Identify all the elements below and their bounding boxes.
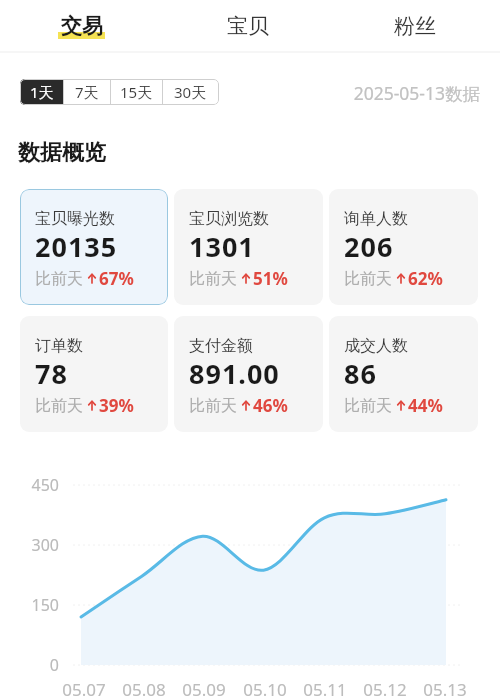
button[interactable]: 宝贝曝光数 (20, 189, 168, 305)
staticText: 粉丝 (394, 13, 436, 39)
staticText: 比前天 (35, 269, 83, 289)
button[interactable]: 订单数 (20, 316, 168, 432)
staticText: 比前天 (344, 396, 392, 416)
staticText: 150 (0, 594, 59, 616)
staticText: 450 (0, 474, 59, 496)
staticText: 0 (0, 654, 59, 676)
staticText: 支付金额 (189, 336, 253, 356)
staticText: 15天 (120, 82, 153, 102)
button[interactable]: 1天 (20, 79, 63, 105)
staticText: 78 (35, 355, 68, 392)
staticText: 比前天 (189, 269, 237, 289)
staticText: 44% (408, 394, 443, 417)
button[interactable]: 粉丝 (331, 0, 498, 51)
button[interactable]: 询单人数 (329, 189, 478, 305)
staticText: 宝贝浏览数 (189, 209, 269, 229)
staticText: 交易 (61, 13, 103, 39)
staticText: 1天 (30, 82, 54, 102)
staticText: 2025-05-13数据 (339, 81, 480, 105)
staticText: 05.10 (235, 678, 295, 700)
button[interactable]: 宝贝浏览数 (174, 189, 323, 305)
staticText: 891.00 (189, 355, 280, 392)
staticText: 206 (344, 228, 394, 265)
button[interactable]: 15天 (110, 79, 162, 105)
staticText: 30天 (174, 82, 207, 102)
button[interactable]: 交易 (0, 0, 164, 51)
button[interactable]: 成交人数 (329, 316, 478, 432)
staticText: 05.11 (295, 678, 355, 700)
staticText: 比前天 (344, 269, 392, 289)
button[interactable]: 支付金额 (174, 316, 323, 432)
staticText: 20135 (35, 228, 118, 265)
staticText: 7天 (75, 82, 99, 102)
button[interactable]: 30天 (162, 79, 219, 105)
staticText: 86 (344, 355, 377, 392)
staticText: 宝贝 (227, 13, 269, 39)
staticText: 1301 (189, 228, 255, 265)
staticText: 51% (253, 267, 288, 290)
staticText: 比前天 (189, 396, 237, 416)
staticText: 39% (99, 394, 134, 417)
staticText: 05.08 (114, 678, 174, 700)
staticText: 05.13 (415, 678, 475, 700)
staticText: 数据概览 (18, 139, 106, 167)
staticText: 46% (253, 394, 288, 417)
staticText: 300 (0, 534, 59, 556)
staticText: 62% (408, 267, 443, 290)
staticText: 宝贝曝光数 (35, 209, 115, 229)
staticText: 成交人数 (344, 336, 408, 356)
staticText: 比前天 (35, 396, 83, 416)
staticText: 67% (99, 267, 134, 290)
staticText: 询单人数 (344, 209, 408, 229)
staticText: 订单数 (35, 336, 83, 356)
staticText: 05.12 (355, 678, 415, 700)
button[interactable]: 宝贝 (164, 0, 331, 51)
staticText: 05.09 (174, 678, 234, 700)
staticText: 05.07 (54, 678, 114, 700)
button[interactable]: 7天 (63, 79, 110, 105)
